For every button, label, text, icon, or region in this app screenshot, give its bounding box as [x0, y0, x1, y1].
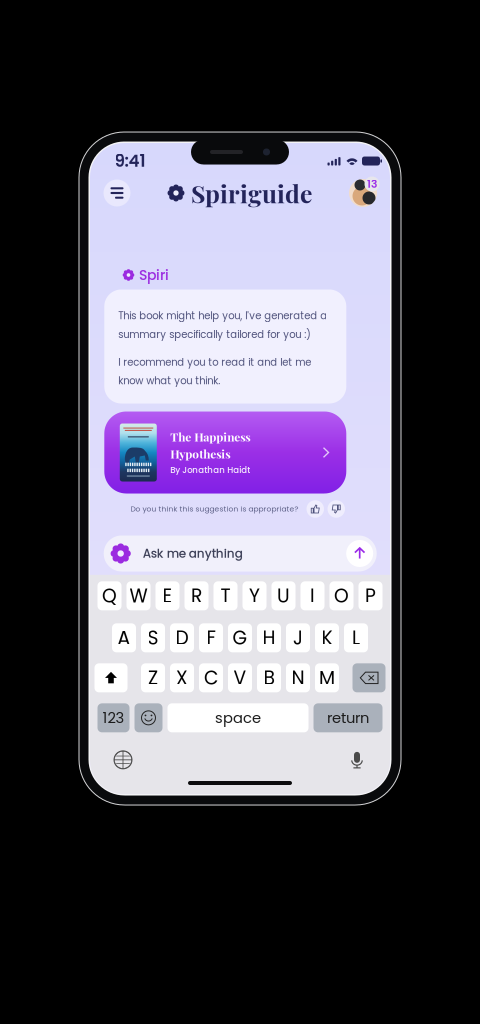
- button[interactable]: M: [315, 663, 339, 692]
- staticText: X: [176, 665, 188, 691]
- staticText: Do you think this suggestion is appropri…: [130, 504, 298, 514]
- staticText: V: [233, 665, 246, 691]
- staticText: 123: [102, 708, 124, 728]
- staticText: I: [310, 583, 315, 609]
- staticText: W: [129, 583, 147, 609]
- button[interactable]: Y: [242, 581, 266, 610]
- staticText: B: [263, 665, 274, 691]
- button[interactable]: Menu: [103, 179, 130, 206]
- button[interactable]: P: [358, 581, 382, 610]
- button[interactable]: T: [213, 581, 237, 610]
- button[interactable]: return: [313, 703, 382, 732]
- button[interactable]: 123: [97, 703, 129, 732]
- staticText: T: [220, 583, 230, 609]
- staticText: E: [162, 583, 172, 609]
- staticText: J: [293, 625, 303, 651]
- staticText: A: [117, 625, 130, 651]
- button[interactable]: Dictate: [346, 749, 368, 771]
- button[interactable]: X: [170, 663, 194, 692]
- staticText: H: [262, 625, 275, 651]
- button[interactable]: Switch keyboard: [112, 749, 134, 771]
- staticText: 13: [367, 176, 377, 191]
- button[interactable]: Key: [352, 663, 385, 692]
- staticText: R: [191, 583, 202, 609]
- button[interactable]: space: [167, 703, 308, 732]
- button[interactable]: Profile: [345, 175, 381, 211]
- staticText: I recommend you to read it and let me: [118, 355, 311, 369]
- button[interactable]: Helpful: [306, 500, 324, 518]
- button[interactable]: K: [315, 623, 339, 652]
- button[interactable]: O: [329, 581, 353, 610]
- button[interactable]: E: [155, 581, 179, 610]
- button[interactable]: The Happiness: [104, 411, 346, 493]
- staticText: F: [206, 625, 215, 651]
- staticText: summary specifically tailored for you :): [118, 327, 311, 341]
- staticText: M: [319, 665, 335, 691]
- button[interactable]: B: [257, 663, 281, 692]
- button[interactable]: V: [228, 663, 252, 692]
- staticText: Q: [102, 583, 117, 609]
- button[interactable]: Not helpful: [327, 500, 345, 518]
- button[interactable]: U: [271, 581, 295, 610]
- button[interactable]: D: [170, 623, 194, 652]
- button[interactable]: Key: [134, 703, 162, 732]
- staticText: The Happiness: [170, 429, 250, 444]
- staticText: O: [334, 583, 349, 609]
- button[interactable]: Q: [97, 581, 121, 610]
- button[interactable]: A: [112, 623, 136, 652]
- staticText: know what you think.: [118, 374, 220, 388]
- button[interactable]: H: [257, 623, 281, 652]
- button[interactable]: Z: [141, 663, 165, 692]
- staticText: return: [327, 708, 369, 728]
- staticText: D: [175, 625, 188, 651]
- staticText: S: [147, 625, 158, 651]
- button[interactable]: N: [286, 663, 310, 692]
- staticText: Spiri: [139, 265, 169, 285]
- staticText: By Jonathan Haidt: [170, 464, 250, 476]
- staticText: N: [291, 665, 304, 691]
- button[interactable]: F: [199, 623, 223, 652]
- staticText: K: [321, 625, 332, 651]
- button[interactable]: R: [184, 581, 208, 610]
- staticText: C: [204, 665, 218, 691]
- staticText: Spiriguide: [191, 177, 312, 209]
- button[interactable]: C: [199, 663, 223, 692]
- button[interactable]: L: [344, 623, 368, 652]
- button[interactable]: Send: [346, 540, 373, 567]
- staticText: U: [277, 583, 290, 609]
- button[interactable]: S: [141, 623, 165, 652]
- staticText: space: [215, 708, 261, 728]
- staticText: L: [352, 625, 360, 651]
- button[interactable]: W: [126, 581, 150, 610]
- staticText: P: [365, 583, 376, 609]
- staticText: This book might help you, I've generated…: [118, 309, 327, 323]
- button[interactable]: Key: [94, 663, 127, 692]
- staticText: Ask me anything: [143, 545, 243, 562]
- staticText: Hypothesis: [170, 446, 230, 461]
- staticText: G: [232, 625, 247, 651]
- button[interactable]: G: [228, 623, 252, 652]
- button[interactable]: J: [286, 623, 310, 652]
- staticText: Z: [148, 665, 158, 691]
- staticText: Y: [249, 583, 260, 609]
- staticText: 9:41: [114, 149, 145, 173]
- button[interactable]: I: [300, 581, 324, 610]
